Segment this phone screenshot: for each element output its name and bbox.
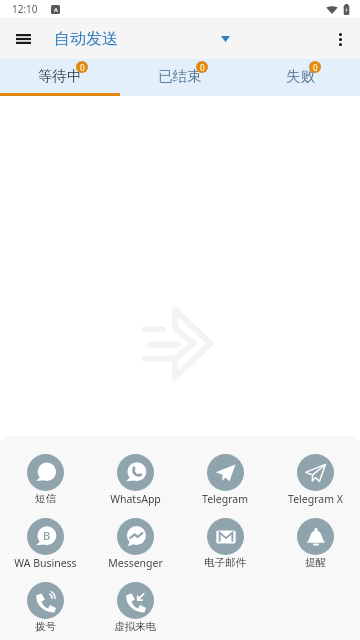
staticText: 已结束	[158, 67, 202, 85]
staticText: Messenger	[108, 556, 163, 570]
staticText: 等待中	[38, 67, 82, 85]
staticText: 虚拟来电	[114, 620, 156, 633]
button[interactable]: Telegram X	[270, 454, 360, 518]
staticText: 自动发送	[54, 29, 118, 49]
button[interactable]: B	[0, 518, 90, 582]
button[interactable]: Messenger	[90, 518, 180, 582]
button[interactable]: 虚拟来电	[90, 582, 180, 640]
button[interactable]: Menu	[8, 24, 38, 54]
button[interactable]: WhatsApp	[90, 454, 180, 518]
button[interactable]: 已结束	[120, 59, 240, 93]
button[interactable]: 短信	[0, 454, 90, 518]
button[interactable]: 失败	[240, 59, 360, 93]
staticText: 拨号	[35, 620, 56, 633]
staticText: A	[54, 6, 58, 14]
button[interactable]: More options	[324, 23, 356, 55]
button[interactable]: 提醒	[270, 518, 360, 582]
staticText: 0	[200, 62, 205, 73]
staticText: 失败	[286, 67, 315, 85]
staticText: 提醒	[305, 556, 326, 569]
staticText: Telegram	[202, 492, 248, 506]
button[interactable]: 拨号	[0, 582, 90, 640]
button[interactable]: 等待中	[0, 59, 120, 93]
button[interactable]: 电子邮件	[180, 518, 270, 582]
staticText: B	[43, 528, 51, 543]
staticText: 0	[80, 62, 85, 73]
button[interactable]: Telegram	[180, 454, 270, 518]
staticText: 电子邮件	[204, 556, 246, 569]
staticText: 0	[313, 62, 318, 73]
staticText: WA Business	[14, 556, 77, 570]
staticText: 12:10	[12, 2, 38, 16]
staticText: WhatsApp	[110, 492, 161, 506]
button[interactable]: Dropdown	[212, 26, 238, 52]
staticText: Telegram X	[288, 492, 343, 506]
staticText: 短信	[35, 492, 56, 505]
